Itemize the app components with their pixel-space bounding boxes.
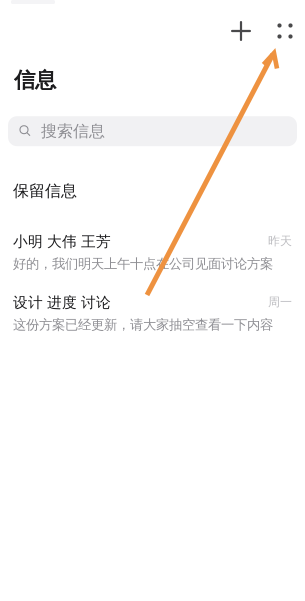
staticText: 信息 — [14, 67, 56, 93]
staticText: 好的，我们明天上午十点在公司见面讨论方案 — [13, 256, 273, 272]
button[interactable]: 设计 进度 讨论 — [0, 283, 305, 344]
button[interactable]: More options — [268, 14, 302, 48]
staticText: 周一 — [268, 295, 292, 309]
staticText: 昨天 — [268, 234, 292, 248]
button[interactable]: New message — [224, 14, 258, 48]
button[interactable]: 搜索信息 — [8, 116, 297, 146]
staticText: 设计 进度 讨论 — [13, 294, 111, 312]
staticText: 这份方案已经更新，请大家抽空查看一下内容 — [13, 317, 273, 333]
button[interactable]: 小明 大伟 王芳 — [0, 222, 305, 283]
staticText: 保留信息 — [13, 181, 77, 201]
staticText: 小明 大伟 王芳 — [13, 233, 111, 251]
staticText: 搜索信息 — [41, 121, 105, 141]
